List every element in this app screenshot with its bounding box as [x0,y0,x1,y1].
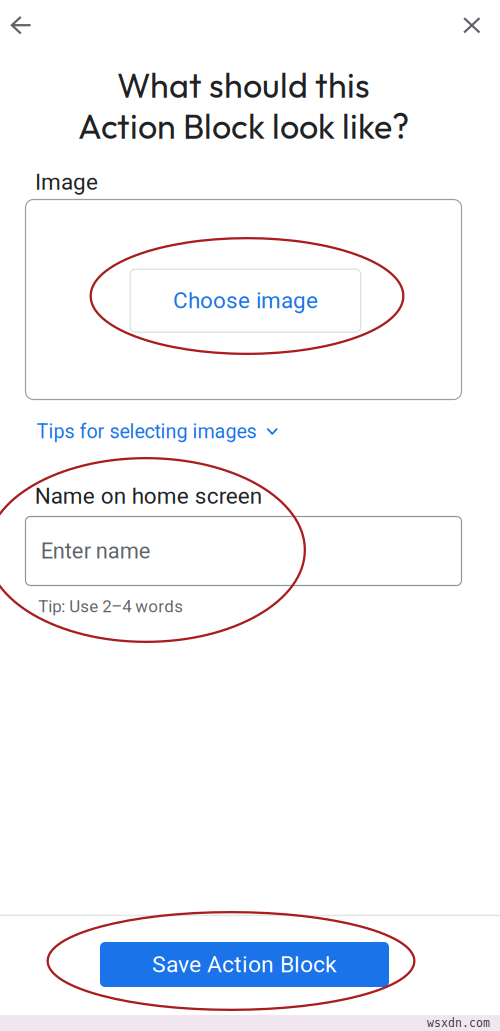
staticText: Choose image [173,287,318,314]
button[interactable]: Save Action Block [100,942,389,987]
staticText: Tip: Use 2–4 words [38,597,183,616]
staticText: Tips for selecting images [36,420,256,443]
button[interactable]: Enter name [25,516,461,585]
button[interactable]: Back [0,3,43,47]
staticText: wsxdn.com [427,1016,490,1030]
staticText: Image [35,169,98,195]
button[interactable]: Tips for selecting images [33,412,281,451]
staticText: Name on home screen [35,483,262,509]
staticText: Enter name [41,538,151,564]
button[interactable]: Close [450,3,494,47]
staticText: Action Block look like? [78,105,409,148]
staticText: What should this [117,64,370,107]
button[interactable]: Choose image [130,269,361,332]
staticText: Save Action Block [152,951,337,978]
